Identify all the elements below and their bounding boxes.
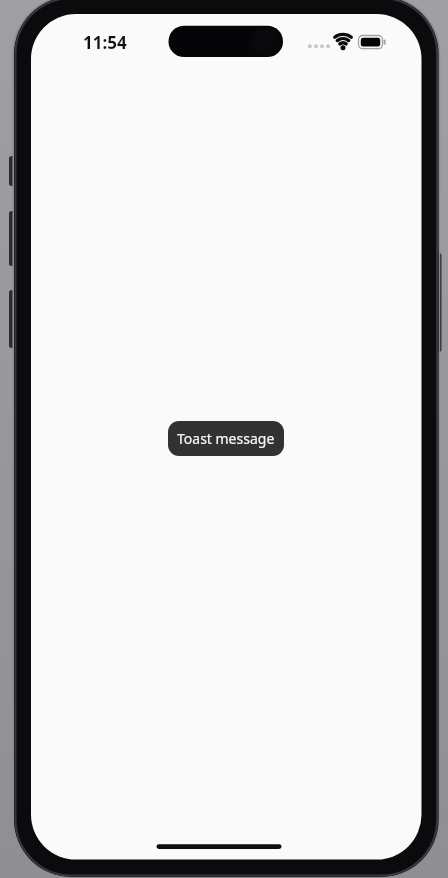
staticText: 11:54	[83, 31, 127, 54]
staticText: Toast message	[177, 429, 275, 448]
